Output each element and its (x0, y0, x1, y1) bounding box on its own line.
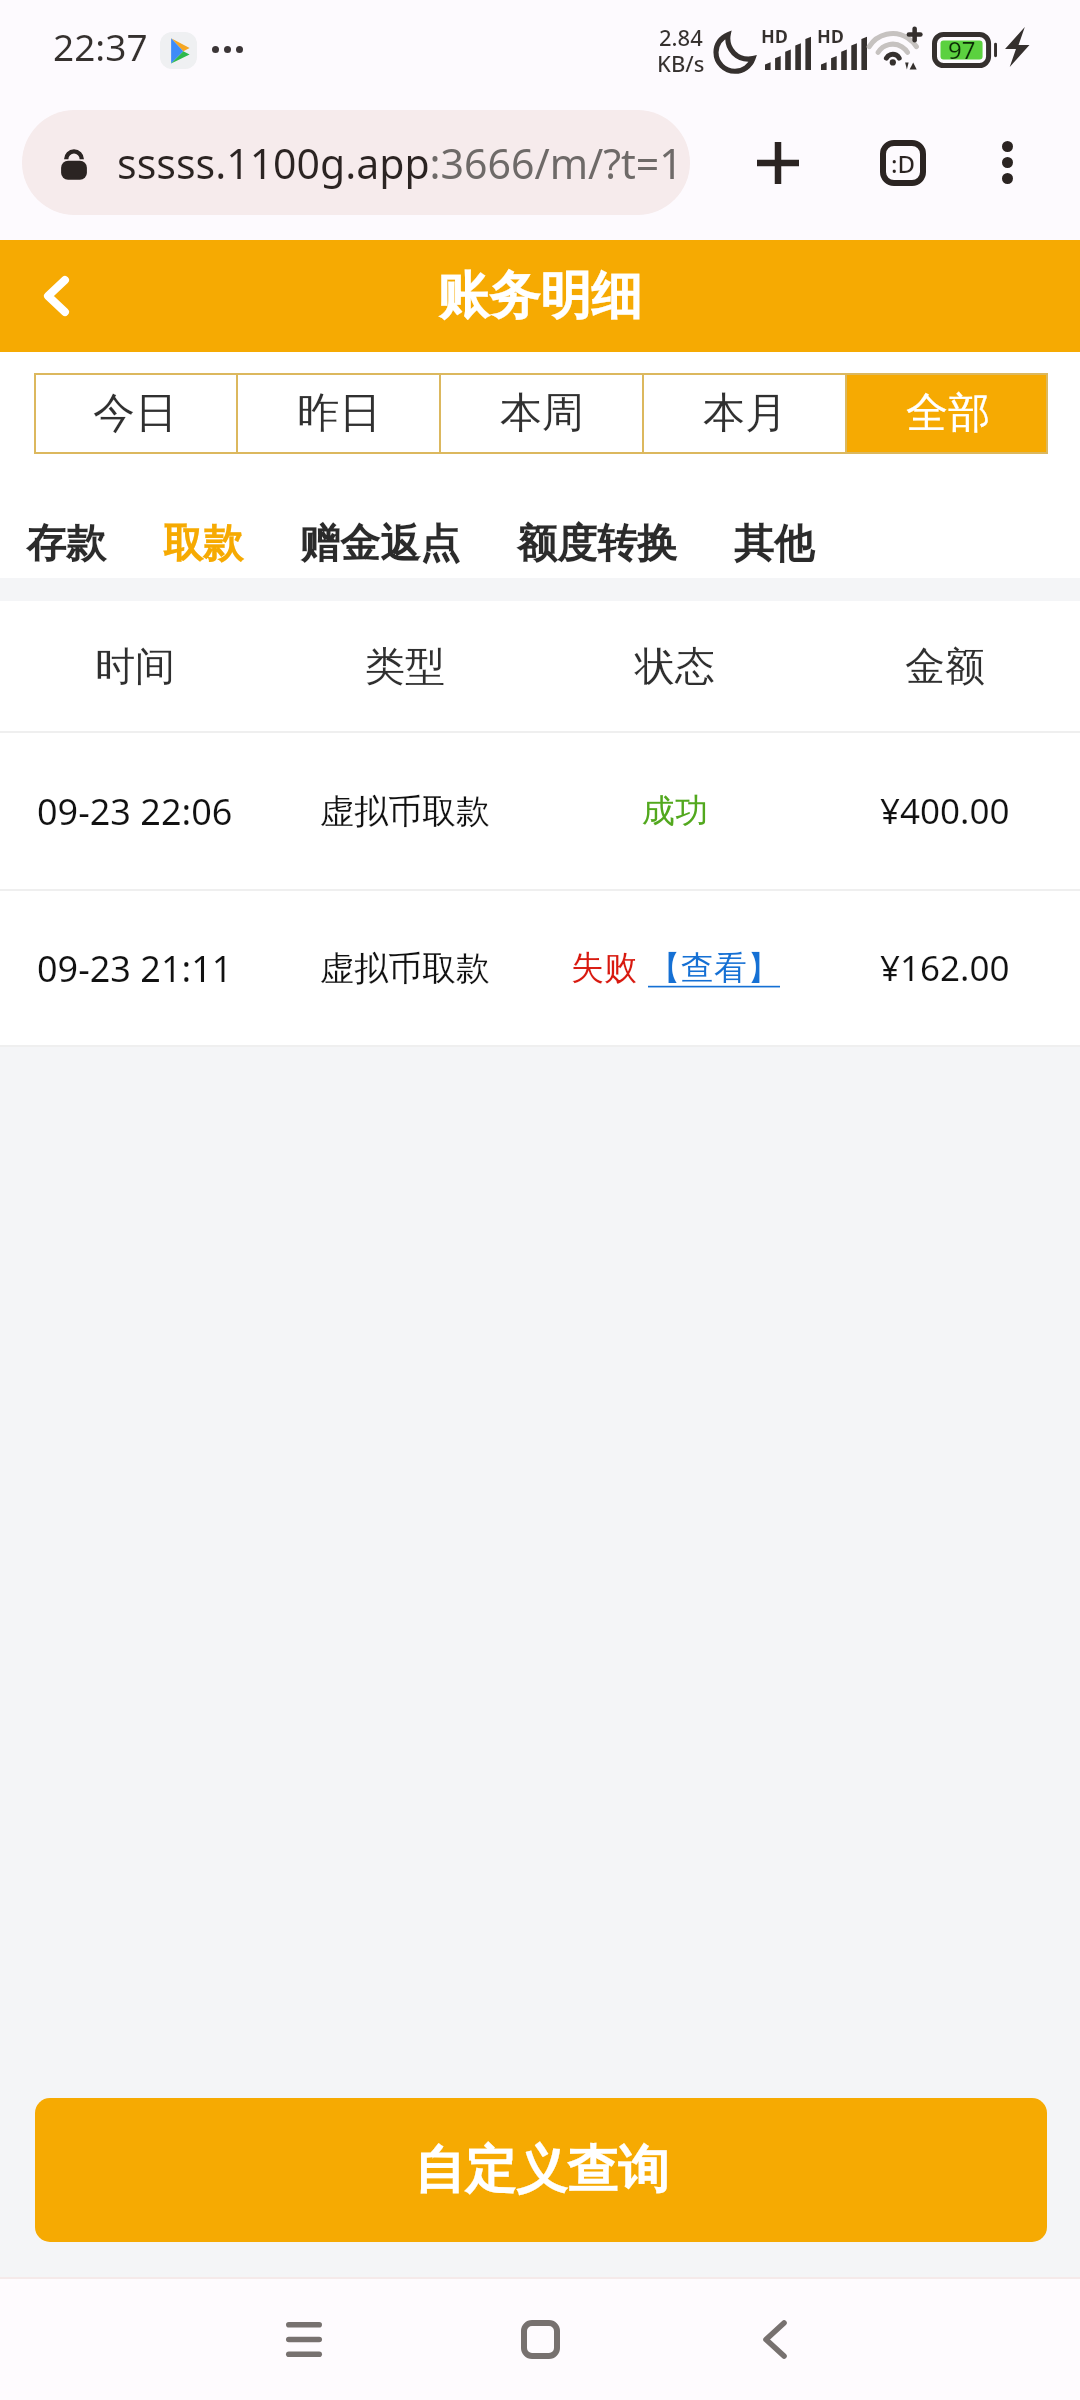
staticText: 金额 (905, 641, 985, 691)
button[interactable]: 09-23 21:11 (0, 891, 1080, 1045)
button[interactable]: 本月 (644, 373, 845, 454)
staticText: sssss.1100g.app:3666/m/?t=1 (117, 135, 683, 191)
button[interactable]: sssss.1100g.app:3666/m/?t=1 (22, 110, 690, 215)
staticText: 虚拟币取款 (320, 790, 490, 833)
button[interactable]: Back (0, 240, 112, 352)
staticText: 存款 (26, 518, 106, 568)
staticText: 本月 (703, 387, 787, 440)
staticText: 额度转换 (517, 518, 677, 568)
staticText: 时间 (95, 641, 175, 691)
staticText: 其他 (734, 518, 814, 568)
button[interactable]: 今日 (34, 373, 236, 454)
staticText: HD (761, 24, 788, 49)
staticText: ¥400.00 (880, 787, 1010, 835)
staticText: 成功 (642, 790, 708, 832)
button[interactable]: 其他 (729, 508, 819, 578)
button[interactable]: 存款 (21, 508, 111, 578)
button[interactable]: 09-23 22:06 (0, 733, 1080, 889)
staticText: 昨日 (297, 387, 381, 440)
button[interactable]: 【查看】 (648, 947, 780, 989)
button[interactable]: Recent apps (244, 2279, 364, 2399)
staticText: 账务明细 (438, 264, 642, 328)
staticText: 今日 (93, 387, 177, 440)
staticText: 失败 (571, 947, 637, 989)
staticText: 类型 (365, 641, 445, 691)
button[interactable]: New tab (720, 100, 835, 225)
button[interactable]: 额度转换 (512, 508, 682, 578)
button[interactable]: 全部 (847, 373, 1048, 454)
button[interactable]: 自定义查询 (35, 2098, 1047, 2242)
staticText: 97 (948, 33, 976, 66)
button[interactable]: More options (950, 100, 1065, 225)
staticText: KB/s (657, 48, 705, 78)
staticText: ¥162.00 (880, 944, 1010, 992)
staticText: 09-23 22:06 (37, 787, 233, 836)
staticText: 本周 (500, 387, 584, 440)
button[interactable]: 昨日 (238, 373, 439, 454)
staticText: 全部 (906, 387, 990, 440)
staticText: 09-23 21:11 (37, 944, 233, 993)
staticText: 自定义查询 (414, 2138, 669, 2202)
button[interactable]: Home (480, 2279, 600, 2399)
button[interactable]: Back (715, 2279, 835, 2399)
staticText: 2.84 (659, 22, 703, 52)
staticText: 虚拟币取款 (320, 947, 490, 990)
staticText: 22:37 (53, 21, 148, 71)
button[interactable]: 赠金返点 (295, 508, 465, 578)
button[interactable]: Tabs (845, 100, 960, 225)
staticText: 赠金返点 (300, 518, 460, 568)
button[interactable]: 本周 (441, 373, 642, 454)
staticText: HD (817, 24, 844, 49)
button[interactable]: 取款 (158, 508, 248, 578)
staticText: 取款 (163, 518, 243, 568)
staticText: :D (891, 147, 916, 180)
staticText: 状态 (635, 641, 715, 691)
staticText: 【查看】 (648, 947, 780, 989)
